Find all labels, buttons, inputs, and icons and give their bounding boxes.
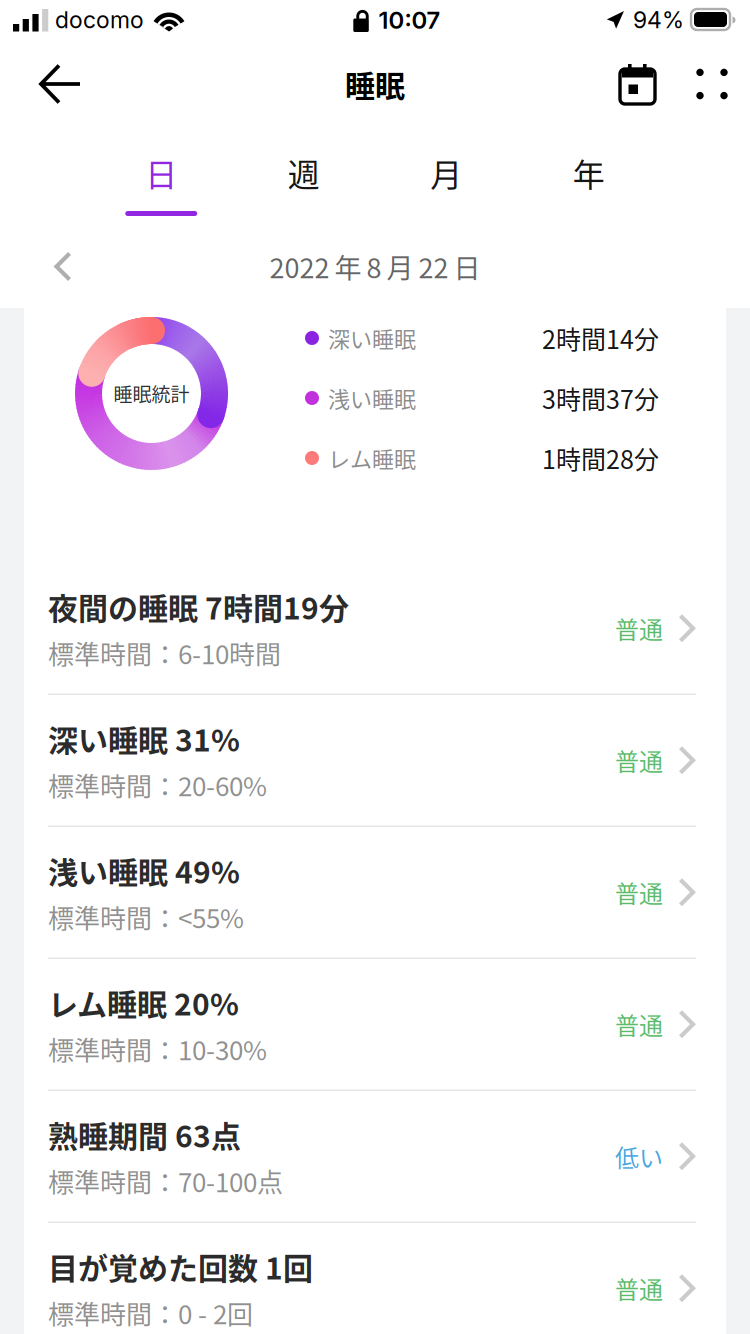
button[interactable]: 週 bbox=[232, 128, 375, 225]
staticText: 1時間28分 bbox=[542, 440, 659, 476]
button[interactable]: Previous day bbox=[0, 225, 102, 308]
button[interactable]: 月 bbox=[375, 128, 517, 225]
staticText: 年 bbox=[573, 150, 605, 196]
button[interactable]: 深い睡眠 31% bbox=[24, 695, 726, 827]
staticText: 2022 年 8 月 22 日 bbox=[269, 247, 480, 286]
staticText: 浅い睡眠 bbox=[328, 382, 416, 414]
staticText: 普通 bbox=[615, 1271, 663, 1306]
staticText: 普通 bbox=[615, 1007, 663, 1042]
staticText: 熟睡期間 63点 bbox=[48, 1113, 241, 1156]
staticText: 標準時間：20-60% bbox=[48, 766, 267, 804]
button[interactable]: 夜間の睡眠 7時間19分 bbox=[24, 563, 726, 695]
button[interactable]: 日 bbox=[90, 128, 232, 225]
staticText: レム睡眠 20% bbox=[48, 981, 239, 1024]
button[interactable]: Back bbox=[0, 40, 108, 128]
button[interactable]: レム睡眠 20% bbox=[24, 959, 726, 1091]
staticText: 標準時間：0 - 2回 bbox=[48, 1294, 253, 1332]
staticText: 標準時間：<55% bbox=[48, 898, 244, 936]
staticText: 日 bbox=[145, 150, 177, 196]
staticText: 2時間14分 bbox=[542, 320, 659, 356]
staticText: 月 bbox=[430, 150, 462, 196]
button[interactable]: 年 bbox=[517, 128, 660, 225]
button[interactable]: 熟睡期間 63点 bbox=[24, 1091, 726, 1223]
button[interactable]: 目が覚めた回数 1回 bbox=[24, 1223, 726, 1334]
staticText: 睡眠 bbox=[345, 62, 405, 106]
staticText: 目が覚めた回数 1回 bbox=[48, 1245, 313, 1288]
staticText: 低い bbox=[615, 1139, 663, 1174]
staticText: 普通 bbox=[615, 611, 663, 646]
button[interactable]: Calendar bbox=[602, 40, 674, 128]
staticText: 夜間の睡眠 7時間19分 bbox=[48, 585, 349, 628]
staticText: 普通 bbox=[615, 743, 663, 778]
staticText: 標準時間：10-30% bbox=[48, 1030, 267, 1068]
staticText: 標準時間：70-100点 bbox=[48, 1162, 283, 1200]
staticText: 標準時間：6-10時間 bbox=[48, 634, 281, 672]
staticText: 週 bbox=[288, 150, 320, 196]
staticText: 深い睡眠 31% bbox=[48, 717, 240, 760]
staticText: docomo bbox=[55, 6, 144, 34]
staticText: 睡眠統計 bbox=[113, 380, 189, 407]
button[interactable]: More options bbox=[674, 40, 750, 128]
staticText: 浅い睡眠 49% bbox=[48, 849, 240, 892]
staticText: 3時間37分 bbox=[542, 380, 659, 416]
staticText: 普通 bbox=[615, 875, 663, 910]
staticText: 94% bbox=[633, 6, 684, 34]
staticText: 10:07 bbox=[378, 5, 440, 34]
button[interactable]: 浅い睡眠 49% bbox=[24, 827, 726, 959]
staticText: 深い睡眠 bbox=[328, 322, 416, 354]
staticText: レム睡眠 bbox=[328, 442, 416, 474]
